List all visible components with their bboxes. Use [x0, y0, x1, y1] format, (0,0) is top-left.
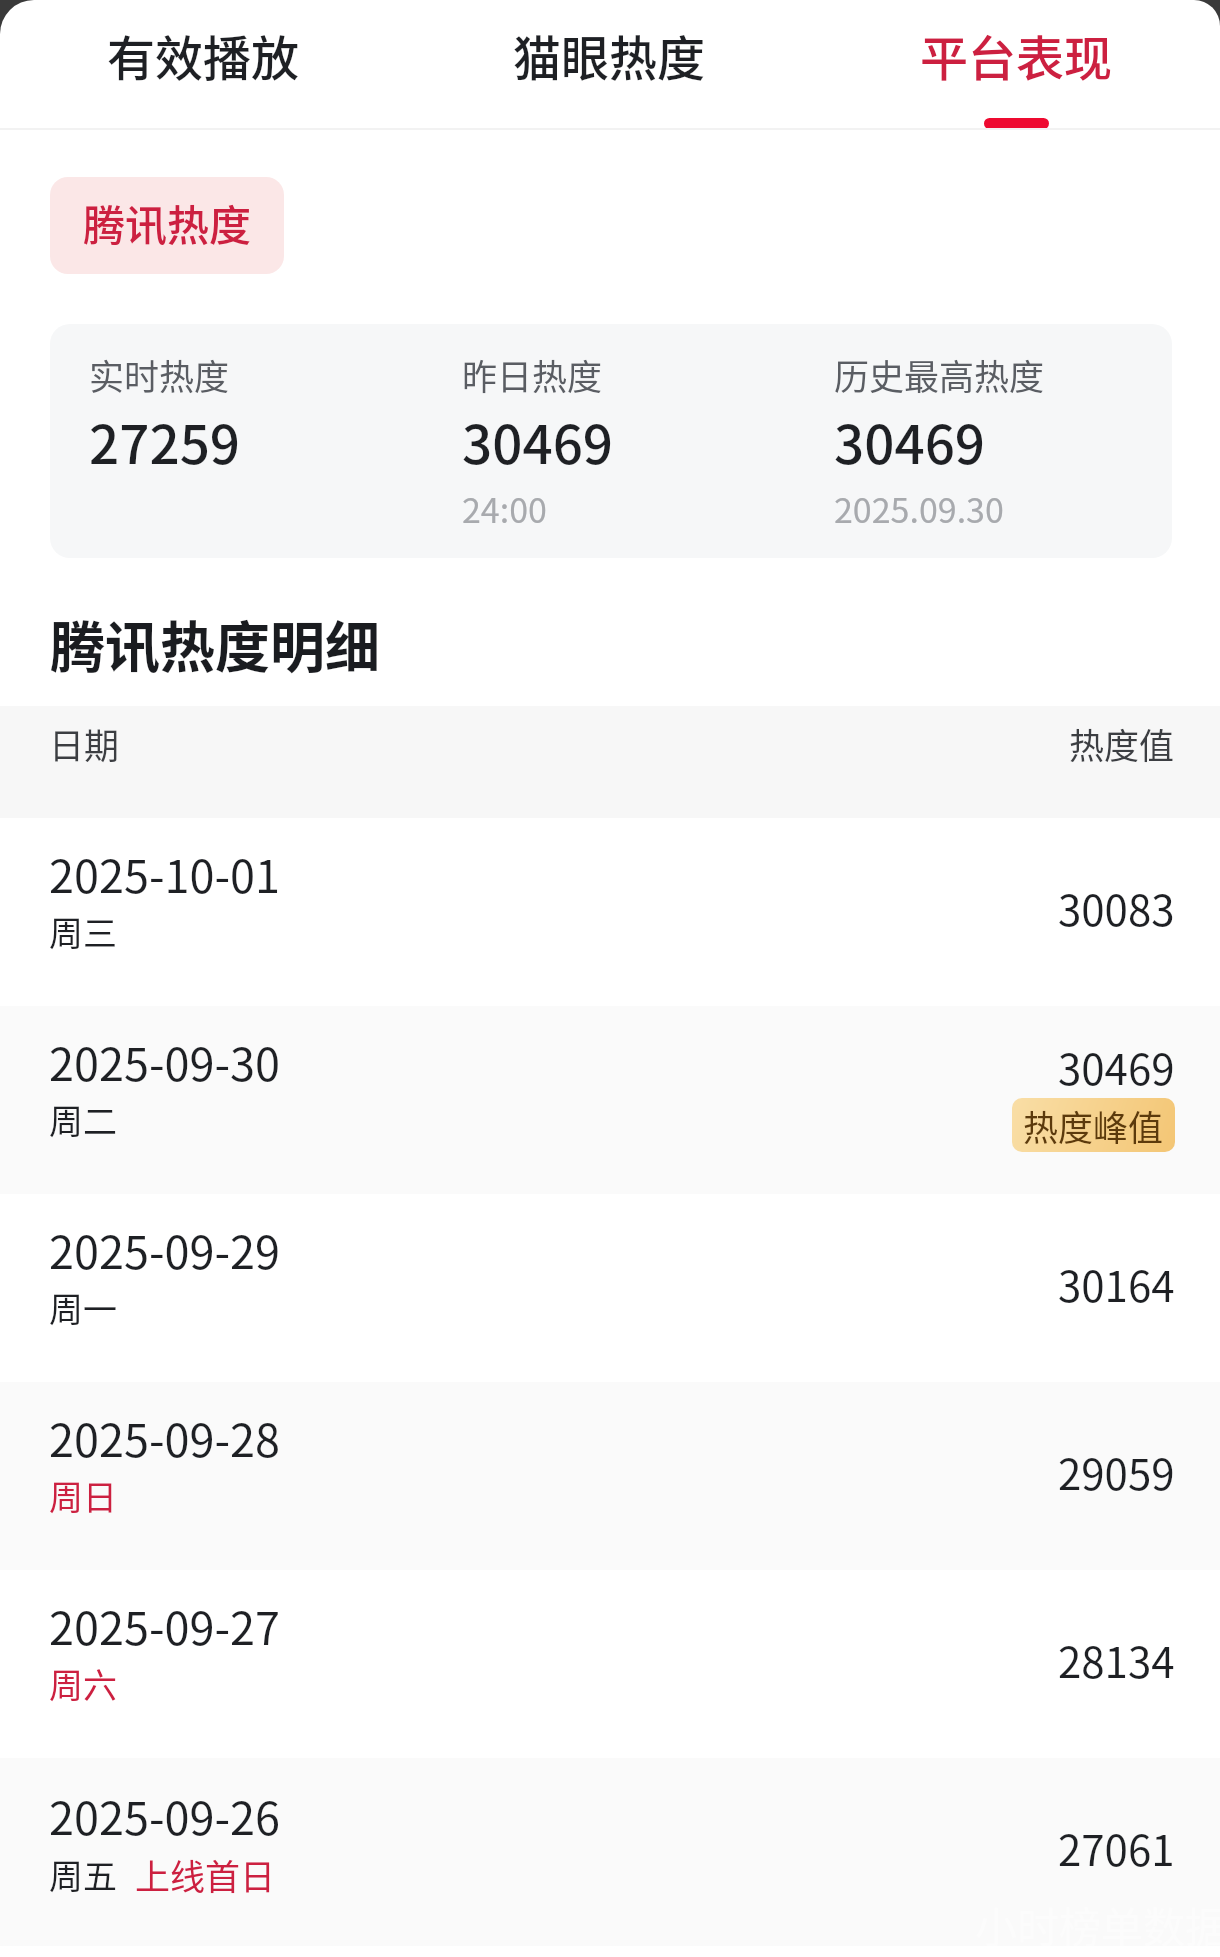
button[interactable]: 有效播放 — [0, 0, 406, 130]
staticText: 2025-10-01 — [49, 841, 281, 906]
staticText: 周日 — [49, 1471, 117, 1520]
staticText: 30469 — [462, 403, 614, 480]
staticText: 2025-09-27 — [49, 1593, 281, 1658]
button[interactable]: 2025-09-28 — [0, 1382, 1220, 1570]
staticText: 2025.09.30 — [834, 484, 1004, 533]
staticText: 27061 — [1058, 1817, 1175, 1878]
staticText: 24:00 — [462, 484, 547, 533]
staticText: 腾讯热度明细 — [50, 603, 381, 683]
staticText: 腾讯热度 — [83, 192, 252, 253]
staticText: 周一 — [49, 1283, 117, 1332]
staticText: 29059 — [1058, 1441, 1175, 1502]
button[interactable]: 2025-10-01 — [0, 818, 1220, 1006]
staticText: 2025-09-30 — [49, 1029, 281, 1094]
staticText: 30083 — [1058, 877, 1175, 938]
button[interactable]: 2025-09-29 — [0, 1194, 1220, 1382]
button[interactable]: 平台表现 — [813, 0, 1220, 130]
staticText: 30469 — [834, 403, 986, 480]
button[interactable]: 猫眼热度 — [406, 0, 813, 130]
staticText: 周六 — [49, 1659, 117, 1708]
staticText: 30469 — [1058, 1036, 1175, 1097]
button[interactable]: 腾讯热度 — [50, 177, 284, 274]
staticText: 日期 — [49, 718, 120, 769]
staticText: 周五 — [49, 1850, 117, 1899]
staticText: 实时热度 — [89, 349, 230, 400]
button[interactable]: 2025-09-30 — [0, 1006, 1220, 1194]
button[interactable]: 2025-09-26 — [0, 1758, 1220, 1946]
staticText: 热度值 — [1069, 718, 1175, 769]
staticText: 27259 — [89, 403, 241, 480]
staticText: 猫眼热度 — [513, 20, 706, 90]
staticText: 2025-09-28 — [49, 1405, 281, 1470]
staticText: 2025-09-26 — [49, 1783, 281, 1848]
staticText: 周三 — [49, 907, 117, 956]
button[interactable]: 2025-09-27 — [0, 1570, 1220, 1758]
staticText: 昨日热度 — [462, 349, 603, 400]
staticText: 28134 — [1058, 1629, 1175, 1690]
staticText: 30164 — [1058, 1253, 1175, 1314]
staticText: 平台表现 — [920, 20, 1113, 90]
staticText: 2025-09-29 — [49, 1217, 281, 1282]
staticText: 热度峰值 — [1023, 1100, 1164, 1151]
staticText: 有效播放 — [107, 20, 300, 90]
staticText: 历史最高热度 — [834, 349, 1045, 400]
staticText: 上线首日 — [135, 1849, 276, 1900]
staticText: 周二 — [49, 1095, 117, 1144]
